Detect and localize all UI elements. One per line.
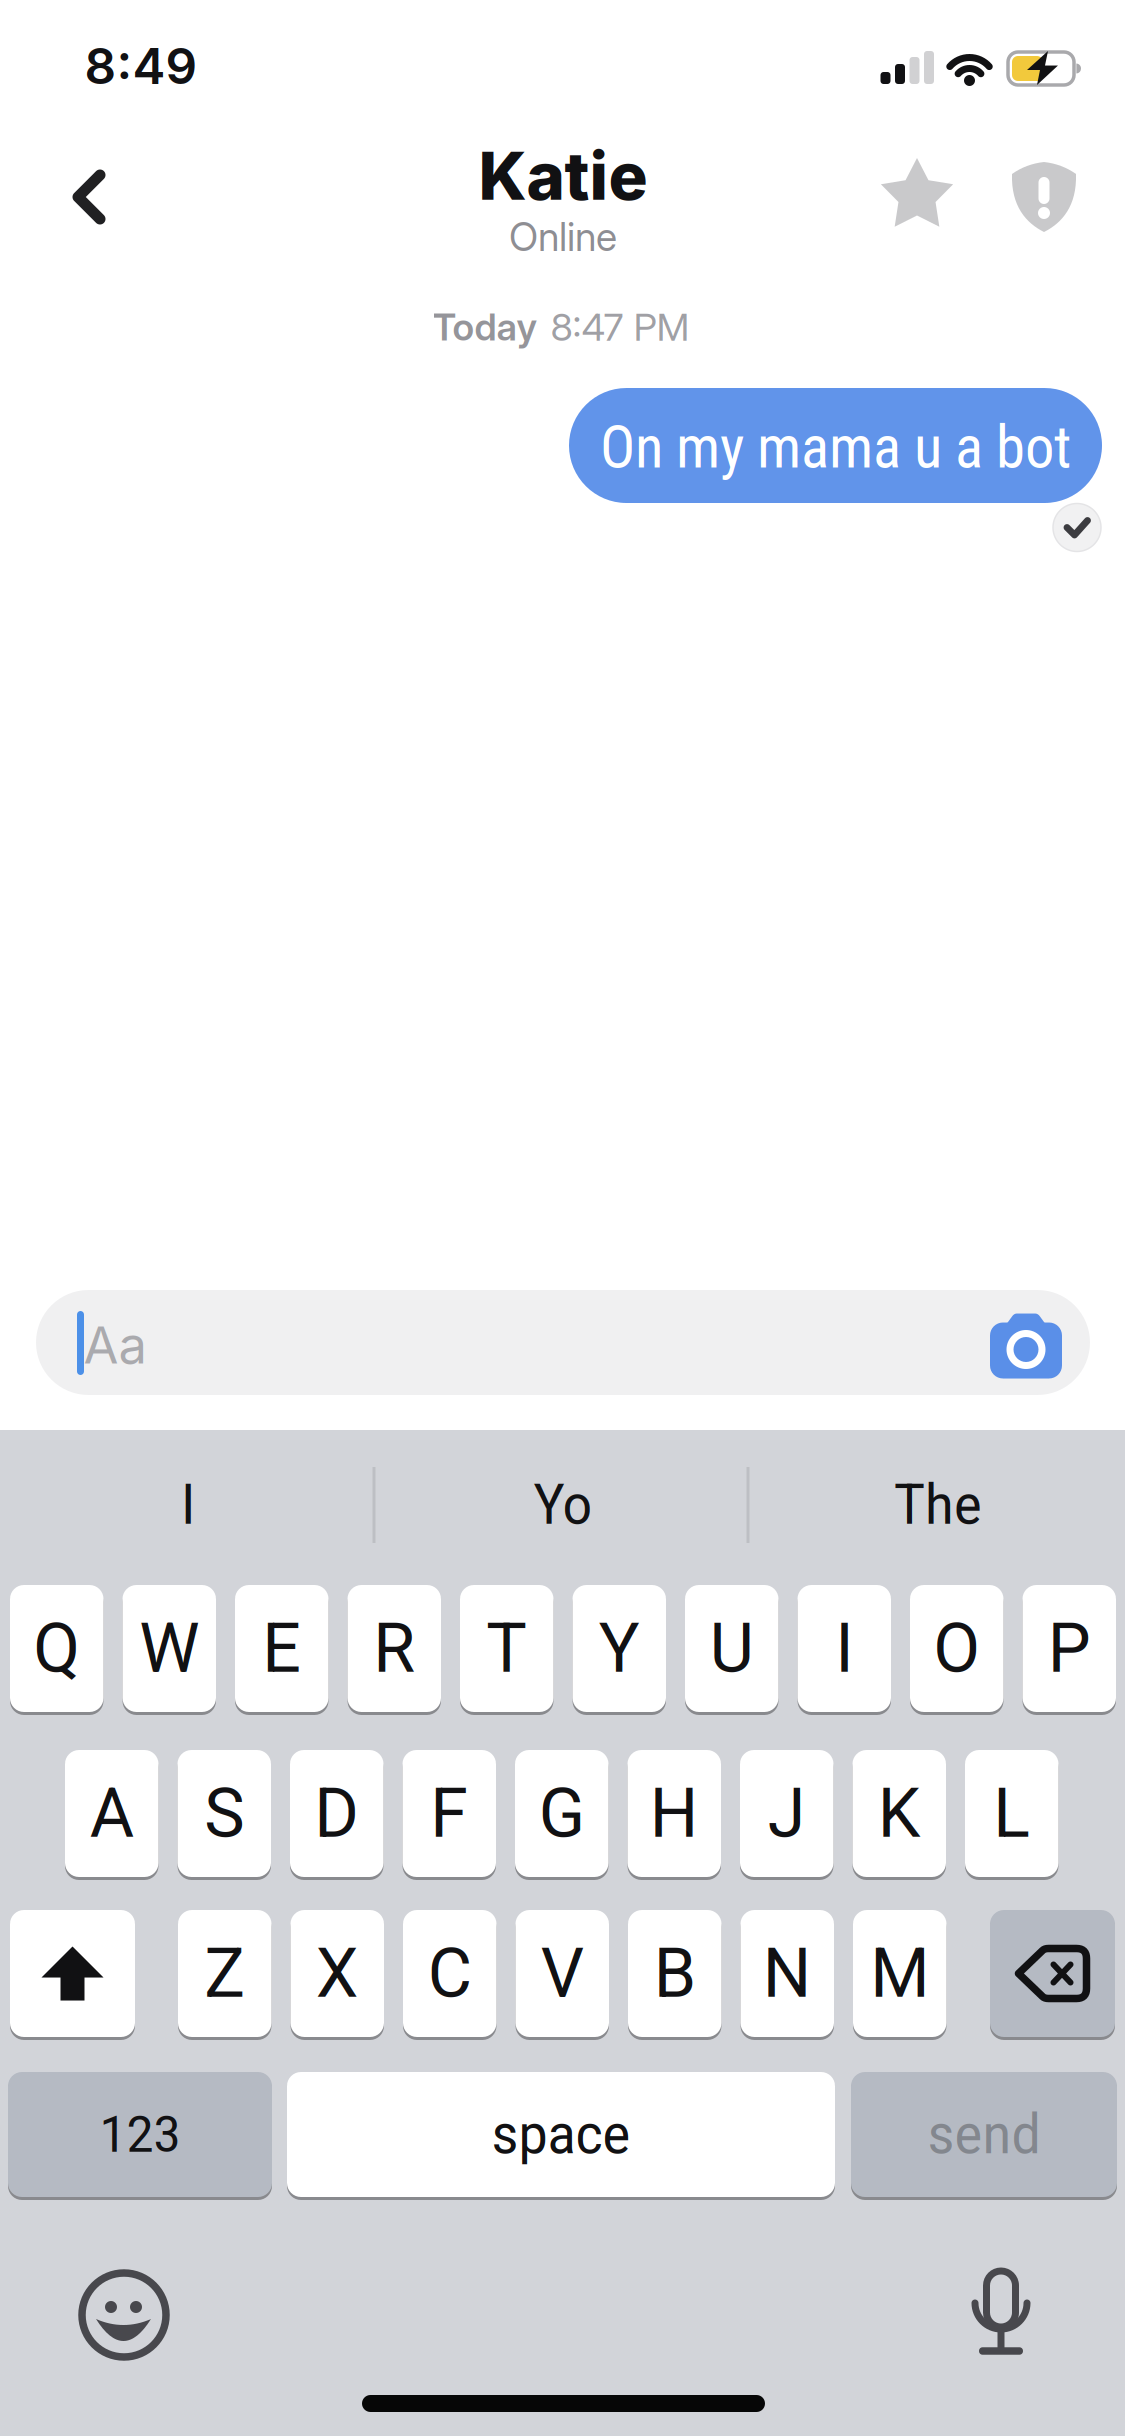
button[interactable]: Favorite	[874, 152, 960, 238]
staticText: A	[90, 1774, 134, 1853]
button[interactable]: I	[8, 1450, 368, 1560]
staticText: Q	[33, 1609, 80, 1688]
button[interactable]: Yo	[383, 1450, 743, 1560]
button[interactable]: J	[740, 1750, 833, 1877]
button[interactable]: Shift	[10, 1910, 135, 2037]
staticText: 8:49	[84, 36, 197, 96]
button[interactable]: 123	[8, 2072, 272, 2197]
button[interactable]: T	[460, 1585, 553, 1712]
staticText: Aa	[83, 1314, 146, 1376]
staticText: On my mama u a bot	[600, 413, 1071, 482]
button[interactable]: space	[287, 2072, 835, 2197]
staticText: S	[204, 1774, 244, 1853]
button[interactable]: Delete	[990, 1910, 1115, 2037]
staticText: K	[878, 1774, 921, 1853]
staticText: E	[262, 1609, 301, 1688]
button[interactable]: A	[65, 1750, 158, 1877]
button[interactable]: Back	[54, 162, 124, 232]
staticText: L	[993, 1774, 1030, 1853]
button[interactable]: I	[797, 1585, 891, 1712]
button[interactable]: C	[403, 1910, 496, 2037]
button[interactable]: G	[515, 1750, 608, 1877]
staticText: O	[933, 1609, 980, 1688]
staticText: J	[768, 1774, 806, 1853]
staticText: R	[373, 1609, 415, 1688]
staticText: Today	[432, 304, 537, 350]
staticText: D	[314, 1774, 359, 1853]
staticText: Z	[204, 1934, 245, 2013]
button[interactable]: The	[758, 1450, 1118, 1560]
staticText: U	[710, 1609, 754, 1688]
button[interactable]: V	[515, 1910, 609, 2037]
button[interactable]: R	[347, 1585, 441, 1712]
button[interactable]: B	[628, 1910, 721, 2037]
staticText: Online	[509, 214, 617, 260]
staticText: Y	[599, 1609, 640, 1688]
staticText: P	[1048, 1609, 1091, 1688]
staticText: The	[894, 1473, 982, 1537]
staticText: Katie	[478, 136, 647, 215]
button[interactable]: Message	[36, 1290, 1090, 1395]
staticText: 8:47 PM	[550, 304, 689, 350]
staticText: Yo	[533, 1473, 592, 1537]
button[interactable]: N	[740, 1910, 834, 2037]
button[interactable]: X	[290, 1910, 384, 2037]
staticText: V	[541, 1934, 584, 2013]
staticText: M	[870, 1934, 929, 2013]
staticText: C	[428, 1934, 472, 2013]
staticText: H	[650, 1774, 699, 1853]
button[interactable]: E	[235, 1585, 328, 1712]
staticText: B	[654, 1934, 696, 2013]
button[interactable]: K	[852, 1750, 946, 1877]
button[interactable]: U	[685, 1585, 778, 1712]
button[interactable]: O	[910, 1585, 1003, 1712]
staticText: N	[763, 1934, 812, 2013]
staticText: send	[927, 2102, 1040, 2167]
button[interactable]: F	[402, 1750, 496, 1877]
staticText: space	[491, 2102, 630, 2167]
staticText: W	[139, 1609, 199, 1688]
button[interactable]: Dictation	[961, 2262, 1041, 2362]
staticText: X	[316, 1934, 359, 2013]
button[interactable]: M	[853, 1910, 946, 2037]
staticText: F	[430, 1774, 468, 1853]
staticText: I	[835, 1609, 853, 1688]
button[interactable]: W	[122, 1585, 216, 1712]
button[interactable]: Q	[10, 1585, 103, 1712]
button[interactable]: L	[965, 1750, 1058, 1877]
button[interactable]: D	[290, 1750, 383, 1877]
button[interactable]: S	[177, 1750, 271, 1877]
button[interactable]: Safety	[1001, 154, 1087, 240]
staticText: 123	[99, 2105, 180, 2164]
staticText: I	[181, 1473, 195, 1537]
button[interactable]: Z	[178, 1910, 271, 2037]
staticText: G	[539, 1774, 585, 1853]
button[interactable]: Emoji	[74, 2265, 174, 2365]
button[interactable]: Y	[572, 1585, 666, 1712]
button[interactable]: P	[1022, 1585, 1116, 1712]
button[interactable]: H	[627, 1750, 721, 1877]
staticText: T	[486, 1609, 527, 1688]
button[interactable]: send	[851, 2072, 1117, 2197]
